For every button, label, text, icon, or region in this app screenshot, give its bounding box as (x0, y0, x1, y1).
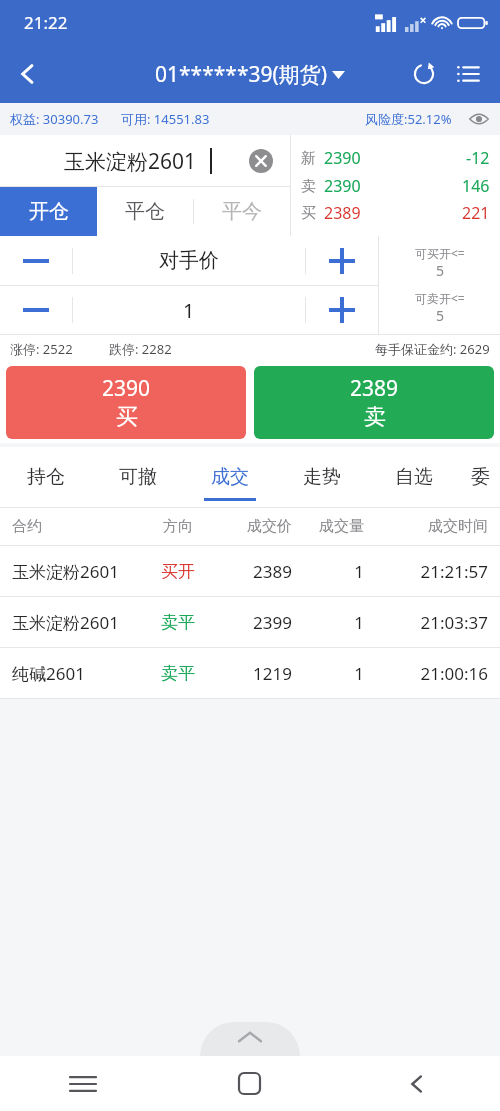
staticText: 纯碱2601 (12, 662, 144, 685)
button[interactable]: 自选 (368, 447, 460, 507)
staticText: 卖平 (144, 612, 212, 633)
staticText: 持仓 (27, 465, 65, 489)
staticText: 21:00:16 (364, 662, 488, 685)
staticText: 自选 (395, 465, 433, 489)
button[interactable]: 走势 (276, 447, 368, 507)
button[interactable]: 纯碱2601 (0, 648, 500, 698)
staticText: 对手价 (159, 248, 219, 273)
staticText: 01******39(期货) (155, 60, 328, 89)
button[interactable]: Increase (306, 236, 378, 285)
button[interactable]: 玉米淀粉2601 (0, 546, 500, 596)
button[interactable]: 持仓 (0, 447, 92, 507)
staticText: 合约 (12, 517, 144, 536)
button[interactable]: Toggle visibility (466, 106, 492, 132)
button[interactable]: Home (166, 1056, 333, 1111)
staticText: 买 (301, 204, 316, 223)
button[interactable]: Increase (306, 286, 378, 334)
staticText: 2389 (212, 560, 292, 583)
button[interactable]: 委 (460, 447, 500, 507)
button[interactable]: Clear (246, 146, 276, 176)
staticText: 成交时间 (364, 517, 488, 536)
staticText: 卖 (301, 177, 316, 196)
staticText: 146 (462, 175, 490, 197)
staticText: 可用: 14551.83 (121, 110, 210, 128)
staticText: 1 (292, 560, 364, 583)
button[interactable]: 平仓 (97, 187, 193, 236)
button[interactable]: 成交 (184, 447, 276, 507)
staticText: 权益: 30390.73 (10, 110, 99, 128)
button[interactable]: Menu list (446, 52, 490, 96)
staticText: 1 (183, 297, 195, 324)
button[interactable]: Back (0, 46, 56, 102)
button[interactable]: 玉米淀粉2601 (0, 597, 500, 647)
staticText: 21:22 (24, 11, 68, 34)
staticText: 2389 (350, 374, 399, 403)
button[interactable]: Refresh (402, 52, 446, 96)
staticText: 5 (436, 306, 445, 325)
staticText: 涨停: 2522 (10, 340, 73, 358)
button[interactable]: 2389 (254, 366, 494, 439)
button[interactable]: 可撤 (92, 447, 184, 507)
button[interactable]: Recent apps (0, 1056, 166, 1111)
staticText: 1 (292, 662, 364, 685)
button[interactable]: Back (333, 1056, 500, 1111)
button[interactable]: 平今 (194, 187, 290, 236)
button[interactable]: 2390 (6, 366, 246, 439)
staticText: 2390 (324, 175, 361, 197)
staticText: 委 (471, 465, 490, 489)
staticText: 玉米淀粉2601 (64, 147, 197, 176)
staticText: 每手保证金约: 2629 (375, 340, 490, 358)
staticText: 卖平 (144, 663, 212, 684)
staticText: 买开 (144, 561, 212, 582)
button[interactable]: Decrease (0, 286, 72, 334)
staticText: 2390 (102, 374, 151, 403)
staticText: 1219 (212, 662, 292, 685)
staticText: 2399 (212, 611, 292, 634)
button[interactable]: Scroll up (200, 1022, 300, 1056)
staticText: 5 (436, 261, 445, 280)
staticText: 1 (292, 611, 364, 634)
staticText: 可撤 (119, 465, 157, 489)
button[interactable]: 01******39(期货) (155, 60, 345, 89)
staticText: 成交 (211, 465, 249, 489)
staticText: 可卖开<= (415, 290, 465, 306)
staticText: 平今 (222, 199, 262, 224)
staticText: 买 (116, 403, 138, 431)
staticText: 21:03:37 (364, 611, 488, 634)
staticText: 成交量 (292, 517, 364, 536)
staticText: 2389 (324, 202, 361, 224)
button[interactable]: Decrease (0, 236, 72, 285)
staticText: 可买开<= (415, 245, 465, 261)
staticText: 方向 (144, 517, 212, 536)
button[interactable]: 开仓 (0, 187, 97, 236)
staticText: 平仓 (125, 199, 165, 224)
staticText: 成交价 (212, 517, 292, 536)
staticText: 玉米淀粉2601 (12, 611, 144, 634)
staticText: 221 (462, 202, 490, 224)
staticText: 2390 (324, 147, 361, 169)
staticText: -12 (466, 147, 490, 169)
staticText: 风险度:52.12% (365, 110, 452, 128)
staticText: 21:21:57 (364, 560, 488, 583)
staticText: 卖 (364, 403, 386, 431)
staticText: 开仓 (29, 199, 69, 224)
staticText: 新 (301, 149, 316, 168)
staticText: 跌停: 2282 (109, 340, 172, 358)
staticText: 玉米淀粉2601 (12, 560, 144, 583)
staticText: 走势 (303, 465, 341, 489)
